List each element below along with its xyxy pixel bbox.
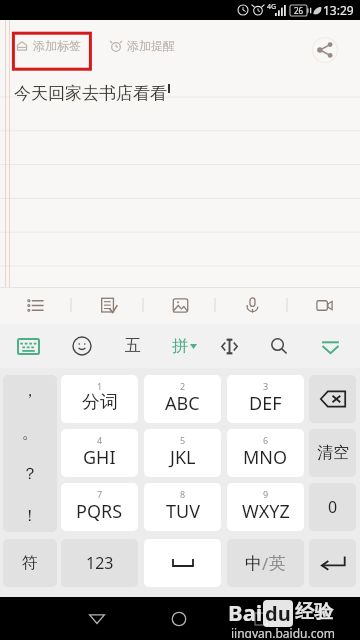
button[interactable]: Share: [309, 34, 341, 66]
button[interactable]: Enter: [309, 539, 356, 587]
staticText: 拼: [172, 336, 188, 356]
staticText: 今天回家去书店看看: [14, 83, 167, 104]
staticText: MNO: [243, 445, 288, 470]
button[interactable]: Recents: [241, 597, 281, 640]
staticText: 5: [180, 434, 186, 446]
staticText: 0: [328, 496, 338, 518]
staticText: 9: [263, 488, 269, 500]
staticText: 英: [269, 553, 286, 574]
staticText: 添加标签: [33, 38, 81, 53]
staticText: 五: [125, 336, 141, 356]
button[interactable]: Keyboard: [6, 324, 50, 368]
button[interactable]: Home: [159, 597, 199, 640]
button[interactable]: Back: [77, 597, 117, 640]
button[interactable]: Search: [257, 324, 301, 368]
staticText: 符: [22, 553, 38, 573]
button[interactable]: 9: [227, 483, 304, 531]
button[interactable]: Emoji: [60, 324, 104, 368]
staticText: 123: [86, 552, 114, 574]
staticText: jingyan.baidu.com: [231, 625, 335, 638]
staticText: 26: [294, 5, 304, 16]
staticText: ！: [22, 506, 38, 526]
button[interactable]: 0: [309, 483, 356, 531]
button[interactable]: 添加标签: [16, 34, 81, 56]
button[interactable]: 7: [61, 483, 138, 531]
button[interactable]: 8: [144, 483, 221, 531]
button[interactable]: Backspace: [309, 375, 356, 423]
staticText: WXYZ: [242, 499, 290, 524]
staticText: /: [262, 552, 269, 575]
staticText: 7: [97, 488, 103, 500]
staticText: 6: [263, 434, 269, 446]
staticText: 13:29: [323, 2, 354, 18]
button[interactable]: 五: [111, 324, 155, 368]
staticText: JKL: [170, 445, 196, 470]
button[interactable]: 1: [61, 375, 138, 423]
staticText: 清空: [317, 443, 349, 463]
button[interactable]: 2: [144, 375, 221, 423]
button[interactable]: 6: [227, 429, 304, 477]
button[interactable]: Bullet list: [17, 287, 53, 324]
staticText: 4G: [267, 2, 277, 12]
staticText: TUV: [166, 499, 200, 524]
button[interactable]: Space: [144, 539, 221, 587]
staticText: 2: [180, 380, 186, 392]
button[interactable]: 3: [227, 375, 304, 423]
button[interactable]: Move cursor: [207, 324, 251, 368]
button[interactable]: 符: [3, 539, 57, 587]
button[interactable]: ，: [3, 375, 57, 532]
button[interactable]: 拼: [162, 324, 206, 368]
staticText: ？: [22, 464, 38, 484]
button[interactable]: Voice input: [234, 287, 270, 324]
staticText: 分词: [82, 391, 118, 414]
staticText: 添加提醒: [127, 38, 175, 53]
button[interactable]: 123: [61, 539, 138, 587]
button[interactable]: 添加提醒: [110, 34, 175, 56]
button[interactable]: 5: [144, 429, 221, 477]
button[interactable]: Checklist: [90, 287, 126, 324]
staticText: GHI: [83, 445, 116, 470]
staticText: DEF: [249, 391, 282, 416]
staticText: 8: [180, 488, 186, 500]
staticText: 3: [263, 380, 269, 392]
staticText: 中: [245, 553, 262, 574]
staticText: Bai: [228, 597, 263, 627]
staticText: 4: [97, 434, 103, 446]
button[interactable]: Record video: [306, 287, 342, 324]
staticText: 1: [97, 380, 103, 392]
button[interactable]: 中: [227, 539, 304, 587]
staticText: du: [265, 600, 291, 627]
staticText: ABC: [165, 391, 200, 416]
staticText: 经验: [295, 600, 333, 624]
staticText: 。: [22, 423, 38, 443]
button[interactable]: Hide keyboard: [308, 324, 352, 368]
button[interactable]: 4: [61, 429, 138, 477]
staticText: ，: [22, 381, 38, 401]
button[interactable]: 清空: [309, 429, 356, 477]
staticText: PQRS: [76, 499, 123, 524]
button[interactable]: Insert image: [162, 287, 198, 324]
